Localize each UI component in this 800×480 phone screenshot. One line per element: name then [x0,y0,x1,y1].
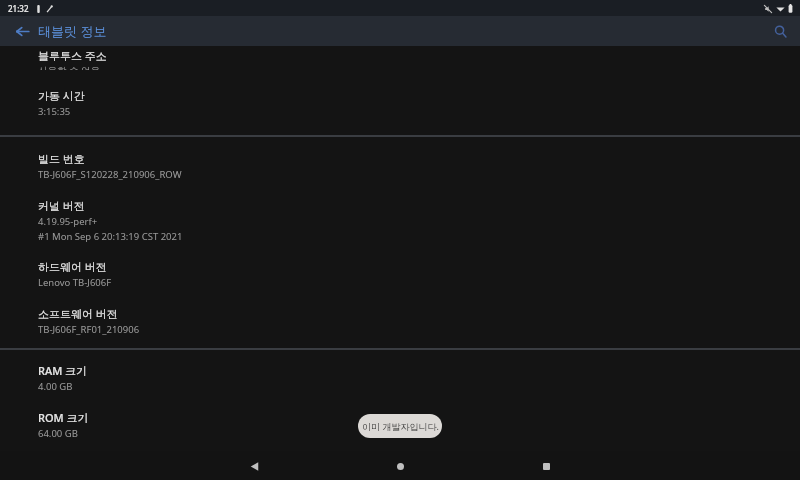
staticText: 가동 시간 [38,88,85,103]
staticText: RAM 크기 [38,363,88,378]
staticText: #1 Mon Sep 6 20:13:19 CST 2021 [38,230,183,243]
staticText: 사용할 수 없음 [38,64,100,70]
button[interactable]: 하드웨어 버전 [0,243,800,289]
button[interactable]: 소프트웨어 버전 [0,289,800,336]
staticText: 3:15:35 [38,105,71,118]
button[interactable]: Search [766,17,794,45]
staticText: 커널 버전 [38,198,85,213]
button[interactable]: Home [386,452,414,480]
button[interactable]: 커널 버전 [0,181,800,243]
button[interactable]: Recent apps [532,452,560,480]
staticText: TB-J606F_RF01_210906 [38,323,140,336]
staticText: Lenovo TB-J606F [38,276,112,289]
button[interactable]: ROM 크기 [0,393,800,440]
button[interactable]: RAM 크기 [0,350,800,393]
staticText: 하드웨어 버전 [38,259,107,274]
button[interactable]: Back [8,17,36,45]
staticText: 이미 개발자입니다. [362,420,439,432]
staticText: 소프트웨어 버전 [38,306,118,321]
staticText: 4.19.95-perf+ [38,215,98,228]
staticText: 빌드 번호 [38,151,85,166]
button[interactable]: Back [240,452,268,480]
button[interactable]: 블루투스 주소 [0,46,800,70]
staticText: ROM 크기 [38,410,89,425]
staticText: 태블릿 정보 [38,22,107,40]
staticText: 21:32 [8,3,29,14]
button[interactable]: 빌드 번호 [0,137,800,181]
staticText: 블루투스 주소 [38,48,107,63]
staticText: TB-J606F_S120228_210906_ROW [38,168,182,181]
staticText: 64.00 GB [38,427,78,440]
staticText: 4.00 GB [38,380,73,393]
button[interactable]: 가동 시간 [0,70,800,118]
